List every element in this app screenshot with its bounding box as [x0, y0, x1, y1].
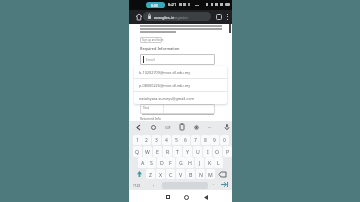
staticText: N	[199, 171, 203, 178]
button[interactable]: 8	[201, 135, 210, 145]
button[interactable]: woogles.io	[143, 12, 211, 21]
button[interactable]: 5	[172, 135, 181, 145]
staticText: Q	[135, 148, 140, 155]
button[interactable]: X	[156, 169, 165, 179]
staticText: G	[179, 159, 183, 166]
button[interactable]: I	[203, 146, 212, 157]
staticText: .	[213, 180, 215, 186]
staticText: U	[196, 148, 200, 155]
button[interactable]: 1	[133, 135, 142, 145]
button[interactable]: Y	[183, 146, 192, 157]
button[interactable]	[218, 179, 231, 190]
button[interactable]: A	[138, 157, 147, 168]
button[interactable]: N	[196, 169, 205, 179]
button[interactable]: J	[195, 157, 204, 168]
staticText: Email	[146, 57, 155, 62]
staticText: R	[166, 148, 170, 155]
button[interactable]: U	[193, 146, 202, 157]
button[interactable]: G	[176, 157, 185, 168]
button[interactable]: 4	[162, 135, 171, 145]
staticText: A	[141, 159, 145, 166]
button[interactable]: 6	[181, 135, 190, 145]
staticText: P	[226, 148, 230, 155]
staticText: W	[145, 148, 150, 155]
staticText: ,	[153, 181, 155, 187]
staticText: F	[169, 159, 172, 166]
button[interactable]: M	[206, 169, 215, 179]
staticText: Required Information	[140, 46, 180, 51]
button[interactable]: V	[176, 169, 185, 179]
button[interactable]	[204, 195, 208, 200]
button[interactable]: B	[186, 169, 195, 179]
staticText: T	[176, 148, 179, 155]
staticText: woogles.io	[154, 15, 175, 20]
staticText: 0:05	[151, 3, 159, 8]
staticText: H	[188, 159, 192, 166]
staticText: K	[208, 159, 212, 166]
button[interactable]: T	[173, 146, 182, 157]
staticText: L	[217, 159, 220, 166]
button[interactable]: C	[166, 169, 175, 179]
staticText: 5	[175, 137, 178, 144]
button[interactable]: Z	[146, 169, 155, 179]
staticText: ...	[208, 123, 212, 129]
staticText: 2	[145, 137, 148, 144]
button[interactable]: 7	[191, 135, 200, 145]
button[interactable]: E	[153, 146, 162, 157]
staticText: 1	[136, 137, 139, 144]
staticText: Returned Info	[140, 117, 161, 121]
staticText: 0	[223, 137, 226, 144]
button[interactable]: O	[213, 146, 222, 157]
staticText: Test	[143, 106, 150, 110]
staticText: C	[169, 171, 173, 178]
button[interactable]: K	[205, 157, 214, 168]
button[interactable]: Sign up and learn	[140, 37, 162, 43]
staticText: Z	[149, 171, 152, 178]
staticText: S	[150, 159, 153, 166]
button[interactable]	[166, 195, 170, 199]
staticText: 3	[155, 137, 158, 144]
button[interactable]: R	[163, 146, 172, 157]
button[interactable]: 0	[220, 135, 229, 145]
staticText: 9	[213, 137, 216, 144]
button[interactable]	[216, 14, 222, 20]
button[interactable]: 2	[142, 135, 151, 145]
staticText: GIF	[165, 125, 171, 130]
staticText: Y	[186, 148, 189, 155]
button[interactable]: S	[147, 157, 156, 168]
staticText: /register	[172, 15, 189, 20]
button[interactable]: Email	[140, 54, 215, 65]
staticText: b-10202709@moe-dl.edu.my	[139, 70, 191, 75]
button[interactable]: D	[157, 157, 166, 168]
button[interactable]: 3	[152, 135, 161, 145]
staticText: O	[215, 148, 220, 155]
staticText: D	[160, 159, 164, 166]
staticText: ?123	[133, 183, 141, 188]
staticText: J	[199, 159, 201, 166]
button[interactable]: 9	[210, 135, 219, 145]
button[interactable]: W	[143, 146, 152, 157]
staticText: I	[207, 148, 209, 155]
button[interactable]: H	[185, 157, 194, 168]
staticText: M	[208, 171, 213, 178]
staticText: 6:21	[168, 2, 177, 8]
staticText: 6	[184, 137, 187, 144]
staticText: 8	[204, 137, 207, 144]
button[interactable]	[133, 169, 146, 179]
button[interactable]	[184, 195, 189, 200]
staticText: X	[159, 171, 163, 178]
staticText: natalsyara.surveys@gmail.com	[139, 96, 195, 101]
staticText: V	[179, 171, 183, 178]
button[interactable]	[216, 169, 229, 179]
button[interactable]: Q	[133, 146, 142, 157]
button[interactable]: F	[166, 157, 175, 168]
staticText: Sign up and learn	[142, 38, 164, 42]
button[interactable]: P	[223, 146, 232, 157]
staticText: 7	[194, 137, 197, 144]
staticText: E	[156, 148, 159, 155]
button[interactable]: L	[214, 157, 223, 168]
staticText: 4	[165, 137, 168, 144]
button[interactable]	[146, 2, 165, 8]
staticText: B	[189, 171, 193, 178]
